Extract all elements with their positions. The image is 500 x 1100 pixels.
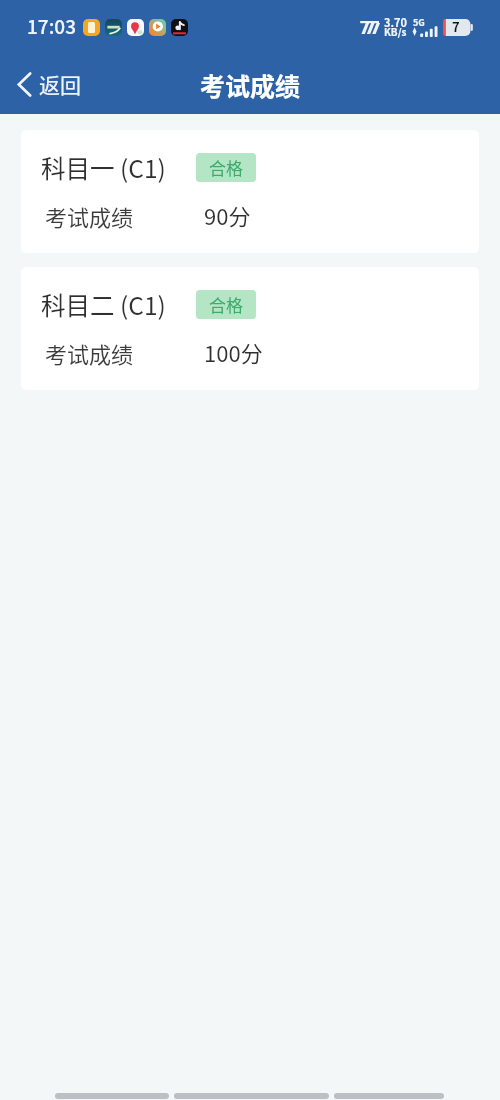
staticText: 返回 xyxy=(39,69,81,99)
staticText: 5G xyxy=(413,16,425,29)
staticText: 100分 xyxy=(204,336,263,368)
staticText: KB/s xyxy=(384,24,407,38)
staticText: 考试成绩 xyxy=(45,200,134,232)
button[interactable]: Home xyxy=(174,1093,329,1099)
staticText: 90分 xyxy=(204,199,251,231)
button[interactable]: 科目二 (C1) xyxy=(21,267,479,390)
button[interactable]: Back xyxy=(55,1093,169,1099)
staticText: 7 xyxy=(452,17,460,34)
staticText: 考试成绩 xyxy=(45,337,134,369)
staticText: 考试成绩 xyxy=(200,67,301,103)
button[interactable]: 返回 xyxy=(0,61,93,107)
staticText: 合格 xyxy=(209,292,243,317)
staticText: 科目一 (C1) xyxy=(41,150,166,185)
button[interactable]: 科目一 (C1) xyxy=(21,130,479,253)
staticText: 科目二 (C1) xyxy=(41,287,166,322)
staticText: 3.70 xyxy=(384,14,408,30)
staticText: 17:03 xyxy=(27,12,76,40)
staticText: 合格 xyxy=(209,155,243,180)
button[interactable]: Recent apps xyxy=(334,1093,444,1099)
